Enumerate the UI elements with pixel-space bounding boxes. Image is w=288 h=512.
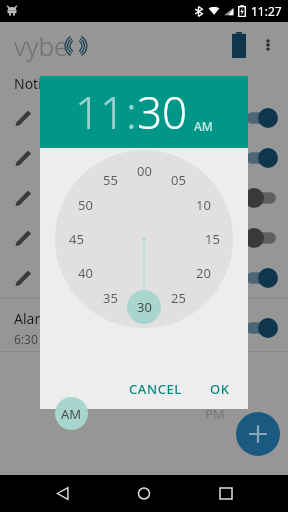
button[interactable]: Toggle off <box>244 188 278 208</box>
button[interactable]: 05 <box>165 171 191 189</box>
button[interactable]: 50 <box>72 196 98 214</box>
button[interactable]: 20 <box>190 264 216 282</box>
staticText: Notifications <box>14 74 98 93</box>
staticText: 6:30 AM <box>14 331 60 347</box>
staticText: 30 <box>137 298 152 316</box>
button[interactable]: 00 <box>131 162 157 180</box>
button[interactable]: 45 <box>63 230 89 248</box>
staticText: vybe <box>14 28 69 63</box>
button[interactable]: Toggle on <box>244 148 278 168</box>
button[interactable]: 15 <box>199 230 225 248</box>
staticText: 20 <box>196 264 211 282</box>
button[interactable]: 30 <box>131 298 157 316</box>
button[interactable]: Add <box>236 412 280 456</box>
button[interactable]: Toggle on <box>244 268 278 288</box>
button[interactable]: Toggle on <box>244 108 278 128</box>
button[interactable]: Recents <box>207 475 245 512</box>
staticText: CANCEL <box>129 380 182 398</box>
button[interactable]: 11 <box>75 82 126 142</box>
other: Battery <box>232 32 246 58</box>
button[interactable]: Toggle on <box>0 138 288 178</box>
button[interactable]: AM <box>55 397 88 430</box>
button[interactable]: 30 <box>137 82 188 142</box>
button[interactable]: Back <box>44 475 82 512</box>
staticText: PM <box>205 405 225 423</box>
button[interactable]: 25 <box>165 289 191 307</box>
staticText: 25 <box>171 289 186 307</box>
staticText: 05 <box>171 171 186 189</box>
button[interactable]: Toggle off <box>244 228 278 248</box>
staticText: 00 <box>137 162 152 180</box>
staticText: AM <box>61 405 82 423</box>
staticText: 55 <box>103 171 118 189</box>
button[interactable]: 35 <box>97 289 123 307</box>
button[interactable]: Toggle on <box>0 98 288 138</box>
button[interactable]: 40 <box>72 264 98 282</box>
staticText: : <box>126 82 137 142</box>
button[interactable]: Toggle off <box>0 218 288 258</box>
button[interactable]: Toggle off <box>0 178 288 218</box>
button[interactable]: 55 <box>97 171 123 189</box>
button[interactable]: OK <box>202 374 238 404</box>
staticText: 30 <box>137 82 188 142</box>
staticText: 45 <box>69 230 84 248</box>
button[interactable]: PM <box>198 397 231 430</box>
staticText: OK <box>210 380 230 398</box>
staticText: 15 <box>205 230 220 248</box>
button[interactable]: Toggle on <box>0 258 288 298</box>
staticText: 11:27 <box>251 3 282 19</box>
button[interactable]: Home <box>125 475 163 512</box>
staticText: Alarm <box>14 309 54 328</box>
staticText: 35 <box>103 289 118 307</box>
button[interactable]: AM <box>194 118 213 134</box>
staticText: 10 <box>196 196 211 214</box>
button[interactable]: More options <box>256 33 280 57</box>
staticText: 40 <box>78 264 93 282</box>
staticText: AM <box>194 118 213 134</box>
button[interactable]: Toggle on <box>244 318 278 338</box>
staticText: 11 <box>75 82 126 142</box>
staticText: 50 <box>78 196 93 214</box>
button[interactable]: 10 <box>190 196 216 214</box>
button[interactable]: CANCEL <box>121 374 190 404</box>
